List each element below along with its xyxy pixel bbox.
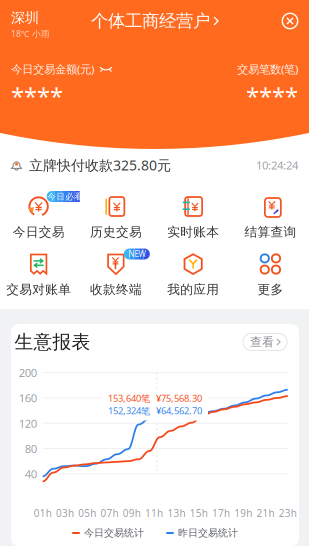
staticText: 15h: [190, 506, 208, 520]
staticText: 120: [19, 415, 37, 431]
staticText: 153,640笔: [108, 392, 150, 405]
staticText: 40: [25, 466, 37, 481]
staticText: 实时账本: [167, 224, 219, 240]
staticText: 查看: [250, 334, 274, 349]
staticText: 立牌快付收款325.80元: [29, 155, 171, 175]
staticText: 10:24:24: [256, 157, 298, 173]
button[interactable]: 历史交易: [77, 188, 154, 242]
staticText: 11h: [145, 506, 163, 520]
staticText: ****: [246, 80, 298, 112]
staticText: ****: [11, 80, 63, 112]
staticText: 收款终端: [90, 281, 142, 297]
staticText: 01h: [34, 506, 52, 520]
button[interactable]: Close: [281, 12, 298, 29]
staticText: 更多: [257, 281, 283, 297]
staticText: 个体工商经营户: [91, 10, 210, 32]
staticText: 历史交易: [90, 224, 142, 240]
button[interactable]: 收款终端: [77, 246, 154, 300]
staticText: 19h: [234, 506, 252, 520]
staticText: 80: [25, 441, 37, 456]
staticText: 结算查询: [244, 224, 296, 240]
button[interactable]: 今日交易: [0, 188, 77, 242]
button[interactable]: 我的应用: [154, 246, 232, 300]
staticText: 昨日交易统计: [178, 527, 238, 539]
staticText: 03h: [56, 506, 74, 520]
staticText: 23h: [279, 506, 297, 520]
staticText: 152,324笔: [108, 404, 150, 417]
button[interactable]: 结算查询: [232, 188, 309, 242]
staticText: 18℃ 小雨: [11, 28, 50, 39]
staticText: ¥64,562.70: [156, 404, 202, 417]
button[interactable]: 实时账本: [154, 188, 232, 242]
staticText: 17h: [212, 506, 230, 520]
button[interactable]: 立牌快付收款325.80元: [0, 152, 309, 178]
button[interactable]: 查看: [243, 333, 287, 350]
staticText: 09h: [123, 506, 141, 520]
button[interactable]: 个体工商经营户: [91, 10, 218, 32]
staticText: 今日交易金额(元): [11, 61, 94, 77]
staticText: 今日交易: [13, 224, 65, 240]
staticText: 我的应用: [167, 281, 219, 297]
staticText: 生意报表: [14, 330, 90, 354]
staticText: 05h: [78, 506, 96, 520]
button[interactable]: 交易对账单: [0, 246, 77, 300]
staticText: 07h: [100, 506, 118, 520]
staticText: 13h: [167, 506, 185, 520]
staticText: NEW: [128, 249, 145, 259]
button[interactable]: 更多: [232, 246, 309, 300]
staticText: 深圳: [11, 9, 39, 27]
staticText: 交易笔数(笔): [237, 61, 298, 77]
staticText: 交易对账单: [6, 281, 71, 297]
staticText: 今日必看: [47, 191, 83, 202]
staticText: 21h: [256, 506, 274, 520]
staticText: 160: [19, 390, 37, 406]
button[interactable]: Toggle amount visibility: [100, 64, 112, 73]
staticText: 今日交易统计: [84, 527, 144, 539]
staticText: 200: [19, 365, 37, 380]
staticText: ¥75,568.30: [156, 392, 202, 405]
